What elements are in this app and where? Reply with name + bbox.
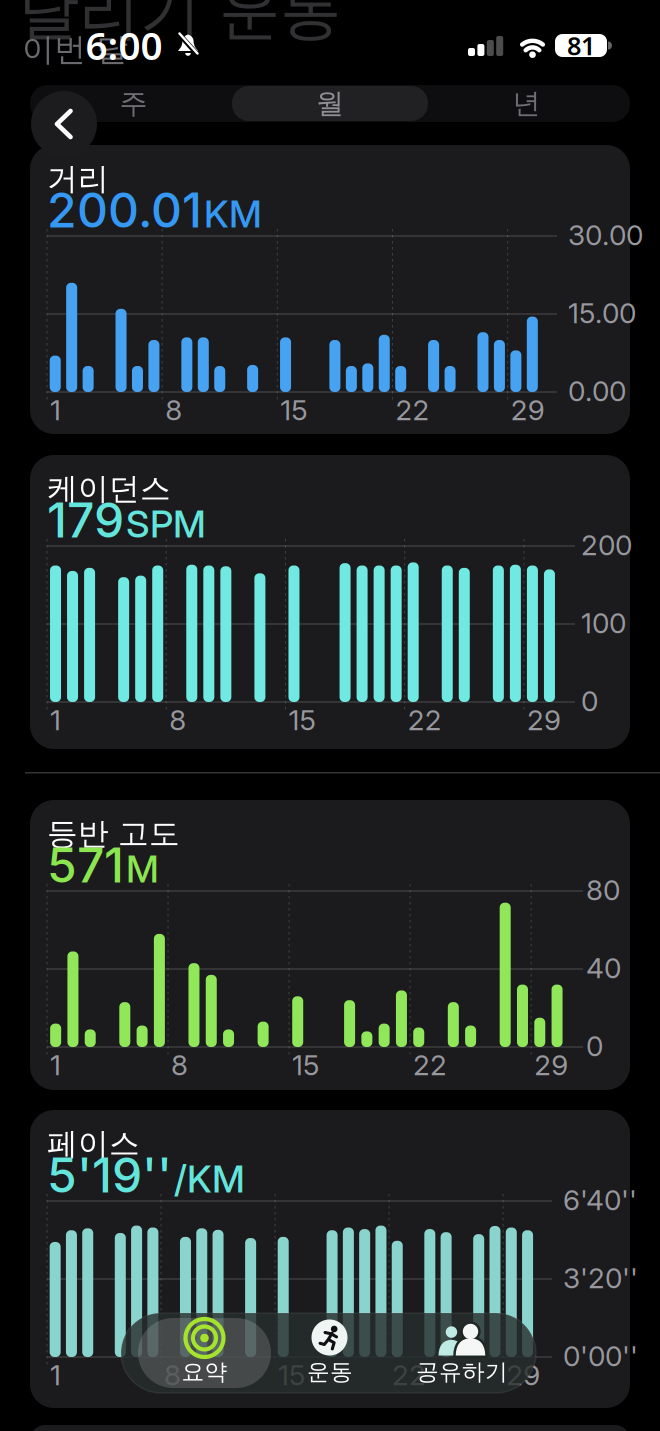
staticText: 요약 — [181, 1358, 227, 1386]
staticText: SPM — [126, 501, 206, 546]
staticText: 1 — [50, 703, 61, 737]
staticText: 22 — [392, 1358, 426, 1392]
staticText: 페이스 — [47, 1125, 140, 1163]
staticText: 케이던스 — [47, 470, 171, 508]
staticText: M — [126, 846, 159, 891]
staticText: 40 — [586, 951, 621, 985]
staticText: 8 — [165, 393, 182, 427]
staticText: 이번 달 — [22, 30, 128, 69]
staticText: 81 — [567, 29, 595, 62]
staticText: 공유하기 — [416, 1358, 508, 1386]
staticText: 8 — [169, 703, 186, 737]
staticText: 15 — [278, 1358, 305, 1392]
staticText: 15 — [288, 703, 315, 737]
button[interactable]: 주 — [35, 85, 232, 122]
staticText: 주 — [119, 86, 147, 121]
staticText: 22 — [408, 703, 442, 737]
staticText: 달리기 운동 — [18, 0, 341, 49]
staticText: KM — [204, 191, 262, 236]
staticText: 100 — [581, 606, 626, 640]
staticText: 30.00 — [568, 218, 643, 252]
staticText: 571 — [47, 836, 124, 894]
staticText: 0 — [586, 1029, 603, 1063]
button[interactable]: 월 — [232, 86, 428, 121]
staticText: 6:00 — [85, 19, 162, 71]
staticText: 1 — [50, 393, 61, 427]
staticText: 8 — [164, 1358, 181, 1392]
staticText: 29 — [527, 703, 561, 737]
staticText: 3'20'' — [563, 1261, 638, 1295]
staticText: 운동 — [307, 1358, 353, 1386]
staticText: 5'19'' — [47, 1146, 172, 1204]
staticText: 22 — [413, 1048, 447, 1082]
staticText: 거리 — [47, 160, 109, 198]
staticText: 0 — [581, 684, 598, 718]
button[interactable]: 요약 — [138, 1313, 271, 1393]
staticText: 0.00 — [568, 374, 626, 408]
staticText: 등반 고도 — [47, 815, 180, 853]
staticText: 29 — [511, 393, 545, 427]
staticText: 년 — [512, 86, 540, 121]
button[interactable]: 뒤로 — [31, 91, 97, 157]
staticText: 29 — [534, 1048, 568, 1082]
button[interactable]: 년 — [428, 85, 625, 122]
staticText: 80 — [586, 873, 620, 907]
staticText: 1 — [50, 1358, 61, 1392]
staticText: 200.01 — [47, 181, 202, 239]
staticText: 15 — [280, 393, 307, 427]
staticText: 8 — [171, 1048, 188, 1082]
button[interactable]: 운동 — [275, 1313, 385, 1393]
staticText: 22 — [395, 393, 429, 427]
staticText: 0'00'' — [563, 1339, 638, 1373]
staticText: 월 — [316, 86, 344, 121]
staticText: /KM — [174, 1156, 245, 1201]
staticText: 179 — [47, 491, 124, 549]
staticText: 6'40'' — [563, 1183, 637, 1217]
staticText: 1 — [50, 1048, 61, 1082]
staticText: 15 — [292, 1048, 319, 1082]
staticText: 29 — [506, 1358, 540, 1392]
staticText: 200 — [581, 528, 632, 562]
staticText: 15.00 — [568, 296, 636, 330]
button[interactable]: 공유하기 — [397, 1313, 527, 1393]
